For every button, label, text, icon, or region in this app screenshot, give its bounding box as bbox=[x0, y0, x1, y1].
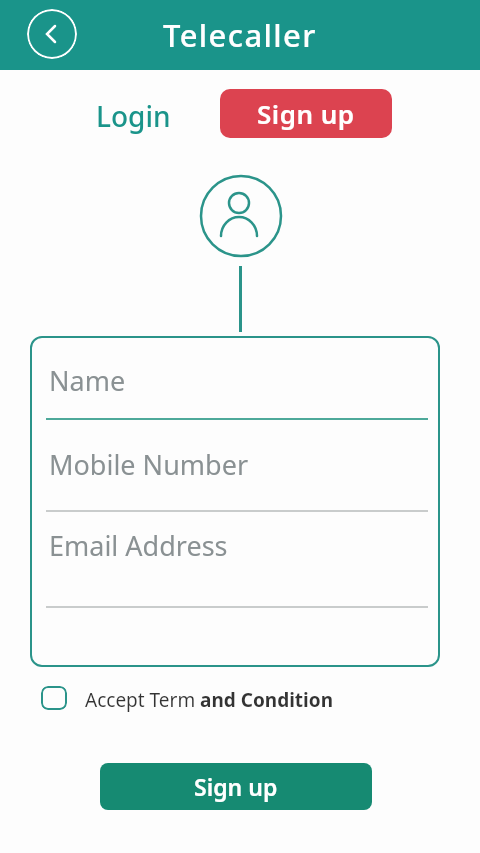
staticText: Sign up bbox=[194, 771, 278, 802]
staticText: Name bbox=[49, 362, 126, 399]
staticText: Accept Term and Condition bbox=[85, 687, 334, 713]
staticText: Login bbox=[96, 97, 171, 135]
staticText: Email Address bbox=[49, 527, 228, 564]
button[interactable]: Sign up bbox=[220, 89, 392, 138]
staticText: Mobile Number bbox=[49, 446, 249, 483]
button[interactable]: Login bbox=[83, 94, 183, 138]
button[interactable] bbox=[27, 9, 77, 59]
staticText: Telecaller bbox=[163, 14, 317, 56]
staticText: Sign up bbox=[257, 96, 355, 131]
button[interactable]: Sign up bbox=[100, 763, 372, 810]
button[interactable] bbox=[41, 686, 67, 710]
